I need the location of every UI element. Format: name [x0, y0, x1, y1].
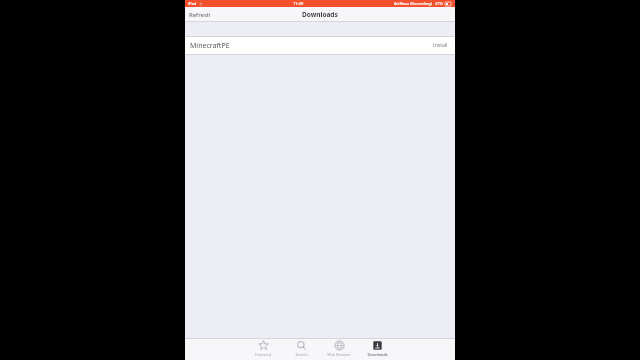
staticText: 47%	[435, 1, 443, 6]
button[interactable]: Web Browser	[320, 340, 358, 360]
button[interactable]: Install	[431, 40, 450, 51]
button[interactable]: Downloads	[358, 340, 396, 360]
staticText: Featured	[255, 352, 271, 357]
staticText: Downloads	[367, 352, 388, 357]
staticText: iPad	[188, 1, 197, 6]
staticText: AirShou (Recording)	[394, 1, 432, 6]
button[interactable]: Featured	[244, 340, 282, 360]
button[interactable]: MinecraftPE	[185, 36, 455, 55]
staticText: Install	[433, 42, 448, 49]
button[interactable]: Search	[282, 340, 320, 360]
staticText: Search	[295, 352, 308, 357]
staticText: 11:39	[293, 1, 304, 6]
staticText: Downloads	[302, 10, 338, 19]
staticText: Refresh	[189, 11, 211, 19]
button[interactable]: Refresh	[185, 9, 215, 21]
staticText: MinecraftPE	[190, 41, 230, 51]
staticText: Web Browser	[327, 352, 351, 357]
